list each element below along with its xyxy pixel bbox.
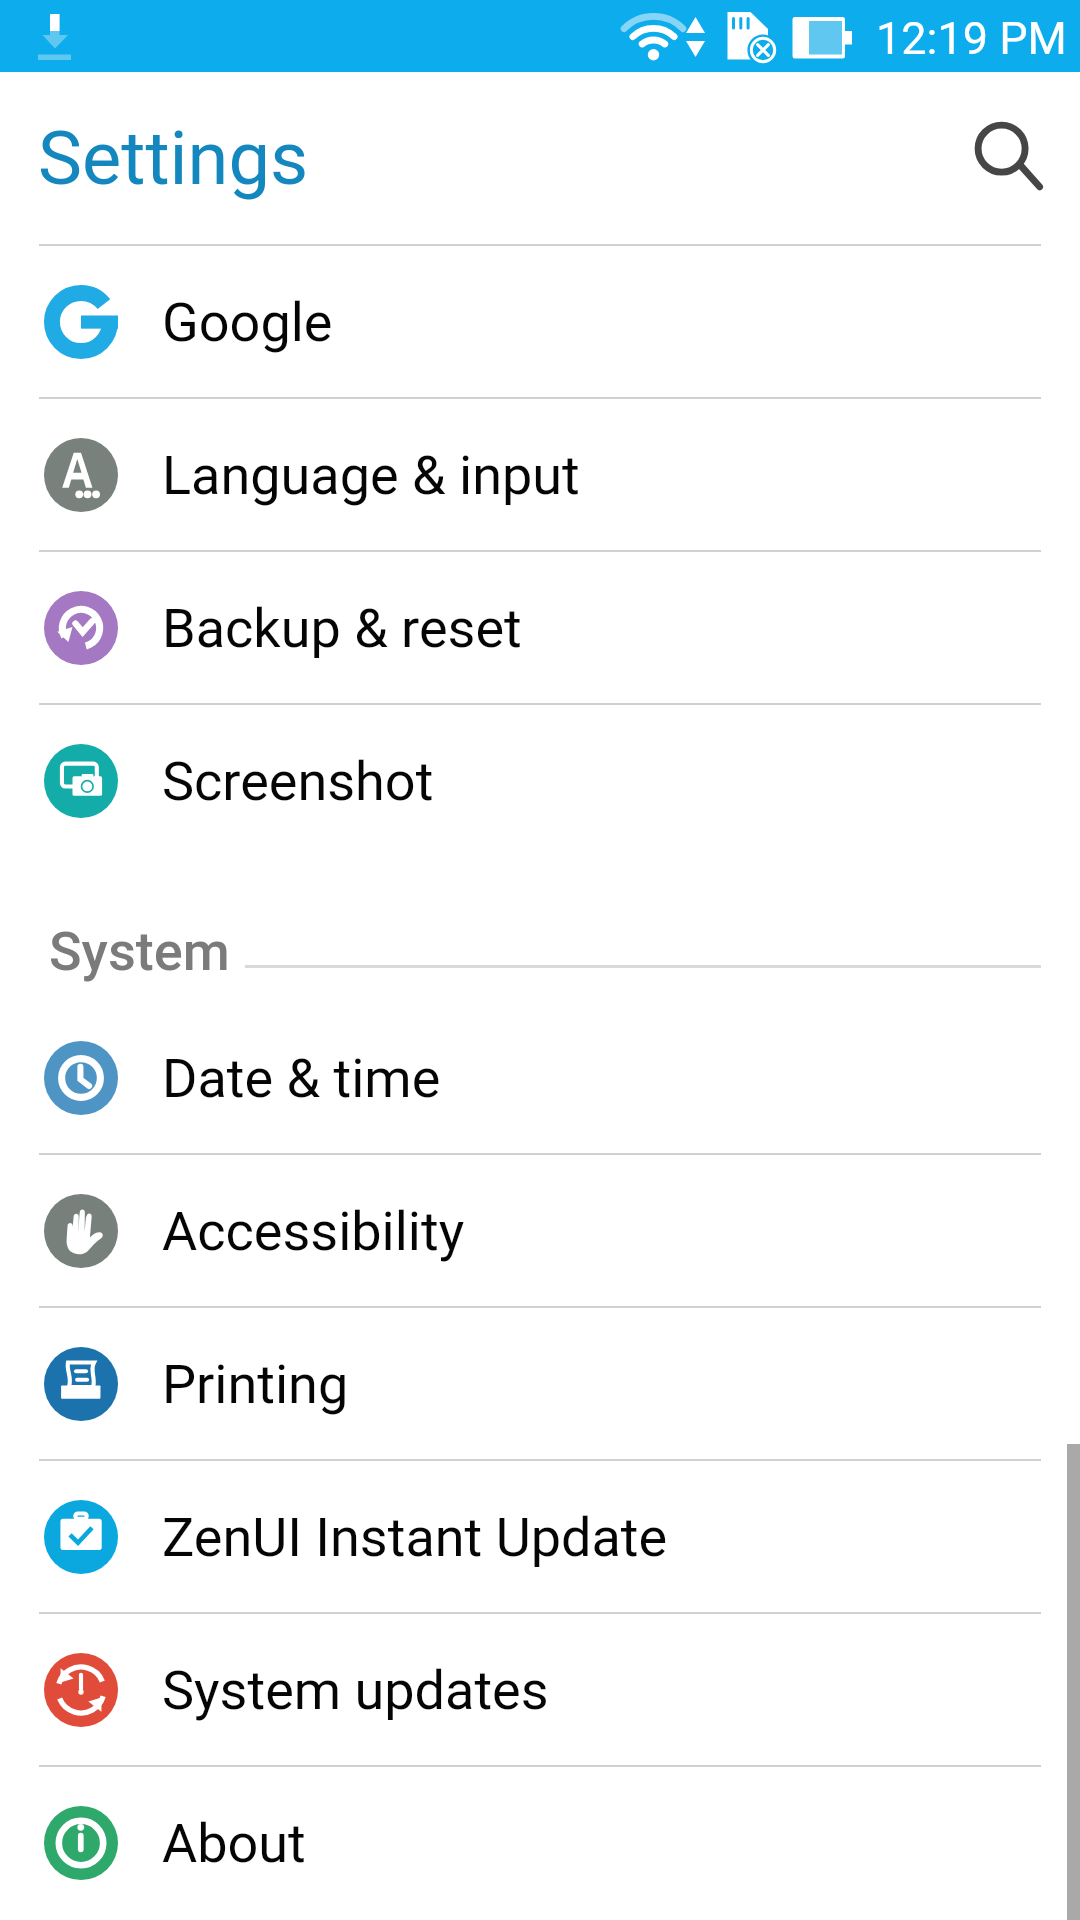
staticText: Accessibility <box>162 1200 465 1263</box>
staticText: Printing <box>162 1353 349 1416</box>
staticText: Backup & reset <box>162 597 522 660</box>
button[interactable]: Screenshot <box>0 705 1080 856</box>
staticText: System <box>49 920 230 983</box>
button[interactable]: Printing <box>0 1308 1080 1459</box>
button[interactable]: Backup & reset <box>0 552 1080 703</box>
staticText: About <box>162 1812 306 1875</box>
button[interactable]: Accessibility <box>0 1155 1080 1306</box>
staticText: Date & time <box>162 1047 441 1110</box>
staticText: System updates <box>162 1659 549 1722</box>
staticText: Settings <box>38 115 309 202</box>
staticText: Screenshot <box>162 750 434 813</box>
button[interactable]: About <box>0 1767 1080 1918</box>
button[interactable]: System updates <box>0 1614 1080 1765</box>
button[interactable]: Search <box>955 90 1063 226</box>
button[interactable]: Language & input <box>0 399 1080 550</box>
staticText: ZenUI Instant Update <box>162 1506 668 1569</box>
staticText: 12:19 PM <box>876 12 1067 65</box>
button[interactable]: ZenUI Instant Update <box>0 1461 1080 1612</box>
staticText: Language & input <box>162 444 580 507</box>
button[interactable]: Date & time <box>0 1002 1080 1153</box>
staticText: Google <box>162 291 333 354</box>
button[interactable]: Google <box>0 246 1080 397</box>
